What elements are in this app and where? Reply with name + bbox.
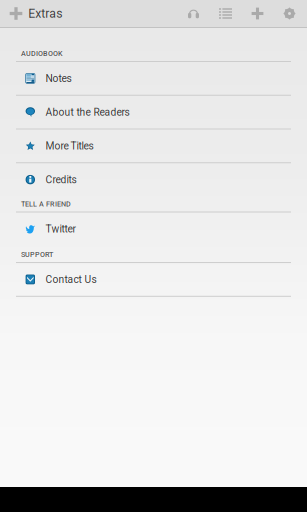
button[interactable]: Twitter	[0, 212, 307, 246]
staticText: More Titles	[45, 140, 93, 152]
button[interactable]: Add	[241, 0, 273, 27]
staticText: About the Readers	[45, 106, 129, 118]
button[interactable]: About the Readers	[0, 96, 307, 130]
button[interactable]: More Titles	[0, 129, 307, 163]
button[interactable]: Settings	[273, 0, 305, 27]
button[interactable]: Chapters	[209, 0, 241, 27]
staticText: Twitter	[45, 223, 75, 235]
button[interactable]: Contact Us	[0, 263, 307, 297]
button[interactable]: Now Playing	[177, 0, 209, 27]
button[interactable]: Credits	[0, 163, 307, 197]
staticText: Extras	[28, 6, 62, 21]
staticText: Notes	[45, 72, 71, 84]
staticText: TELL A FRIEND	[21, 200, 71, 208]
button[interactable]: Notes	[0, 62, 307, 96]
staticText: Contact Us	[45, 273, 96, 285]
button[interactable]: Extras	[0, 0, 68, 27]
staticText: SUPPORT	[21, 250, 53, 259]
staticText: Credits	[45, 174, 76, 186]
staticText: AUDIOBOOK	[21, 49, 63, 58]
